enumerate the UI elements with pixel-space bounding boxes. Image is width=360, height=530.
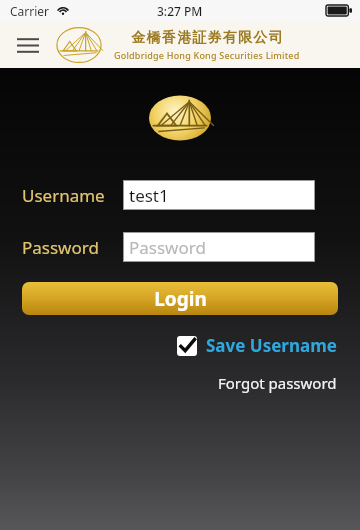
staticText: 金橋香港証券有限公司 bbox=[131, 29, 283, 47]
staticText: Carrier bbox=[10, 3, 50, 19]
staticText: Password bbox=[22, 236, 99, 259]
button[interactable]: Forgot password bbox=[218, 373, 337, 393]
button[interactable]: Password bbox=[123, 232, 315, 262]
button[interactable]: test1 bbox=[123, 180, 315, 210]
staticText: 3:27 PM bbox=[157, 3, 203, 19]
staticText: Username bbox=[22, 184, 105, 207]
staticText: Goldbridge Hong Kong Securities Limited bbox=[114, 49, 300, 61]
staticText: Login bbox=[154, 286, 207, 312]
staticText: Forgot password bbox=[218, 373, 337, 393]
button[interactable]: Login bbox=[22, 282, 338, 315]
button[interactable]: Menu bbox=[12, 29, 44, 61]
staticText: test1 bbox=[129, 184, 169, 207]
staticText: Save Username bbox=[206, 334, 337, 357]
staticText: Password bbox=[129, 236, 206, 259]
button[interactable]: Save Username bbox=[177, 334, 337, 357]
